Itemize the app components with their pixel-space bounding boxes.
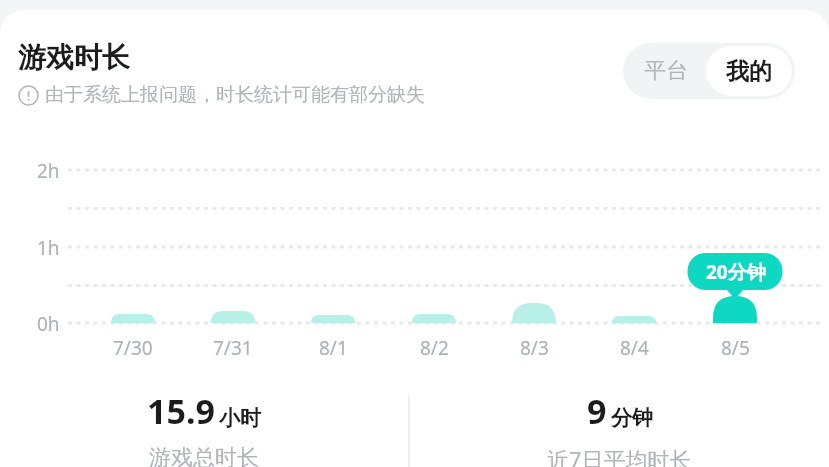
staticText: 8/2 — [420, 335, 449, 361]
staticText: 8/4 — [620, 335, 649, 361]
staticText: 15.9 — [147, 388, 215, 434]
staticText: 20分钟 — [706, 259, 766, 285]
staticText: 分钟 — [611, 405, 653, 431]
staticText: 7/30 — [113, 335, 153, 361]
staticText: 7/31 — [213, 335, 253, 361]
staticText: 近7日平均时长 — [547, 444, 692, 467]
staticText: 8/3 — [520, 335, 549, 361]
button[interactable]: 我的 — [706, 46, 792, 96]
staticText: 8/5 — [721, 335, 750, 361]
staticText: 9 — [587, 388, 607, 434]
staticText: 小时 — [219, 405, 261, 431]
staticText: 0h — [37, 311, 60, 337]
staticText: 2h — [37, 158, 60, 184]
button[interactable]: 平台 — [623, 43, 709, 99]
staticText: 平台 — [644, 57, 688, 85]
staticText: 我的 — [726, 57, 772, 86]
staticText: 1h — [37, 235, 60, 261]
staticText: 由于系统上报问题，时长统计可能有部分缺失 — [45, 83, 425, 107]
button[interactable]: 15.9 — [0, 388, 408, 467]
staticText: 游戏时长 — [18, 40, 130, 75]
staticText: 游戏总时长 — [149, 444, 259, 467]
button[interactable]: 9 — [410, 388, 829, 467]
staticText: 8/1 — [319, 335, 348, 361]
